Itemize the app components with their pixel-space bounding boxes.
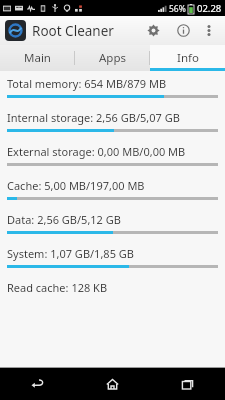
- button[interactable]: Settings: [138, 16, 168, 45]
- button[interactable]: Back: [0, 368, 75, 400]
- button[interactable]: Main: [0, 45, 75, 71]
- staticText: Data: 2,56 GB/5,12 GB: [7, 212, 121, 227]
- button[interactable]: Read cache: 128 KB: [0, 275, 225, 309]
- button[interactable]: Recent apps: [150, 368, 225, 400]
- button[interactable]: Internal storage: 2,56 GB/5,07 GB: [0, 105, 225, 139]
- staticText: Internal storage: 2,56 GB/5,07 GB: [7, 110, 180, 125]
- button[interactable]: Cache: 5,00 MB/197,00 MB: [0, 173, 225, 207]
- staticText: Total memory: 654 MB/879 MB: [7, 76, 167, 91]
- staticText: Cache: 5,00 MB/197,00 MB: [7, 178, 145, 193]
- button[interactable]: More options: [198, 16, 220, 45]
- staticText: System: 1,07 GB/1,85 GB: [7, 246, 134, 261]
- staticText: Apps: [99, 50, 127, 66]
- button[interactable]: System: 1,07 GB/1,85 GB: [0, 241, 225, 275]
- button[interactable]: App icon: [5, 20, 26, 41]
- button[interactable]: Data: 2,56 GB/5,12 GB: [0, 207, 225, 241]
- staticText: Info: [177, 50, 199, 66]
- button[interactable]: Info: [168, 16, 198, 45]
- staticText: Root Cleaner: [32, 22, 114, 40]
- button[interactable]: External storage: 0,00 MB/0,00 MB: [0, 139, 225, 173]
- button[interactable]: Home: [75, 368, 150, 400]
- button[interactable]: Total memory: 654 MB/879 MB: [0, 71, 225, 105]
- staticText: External storage: 0,00 MB/0,00 MB: [7, 144, 186, 159]
- button[interactable]: Info: [150, 45, 225, 71]
- staticText: 02.28: [197, 2, 222, 15]
- button[interactable]: Apps: [75, 45, 150, 71]
- staticText: 56%: [169, 3, 186, 15]
- staticText: Read cache: 128 KB: [7, 280, 108, 295]
- staticText: Main: [24, 50, 51, 66]
